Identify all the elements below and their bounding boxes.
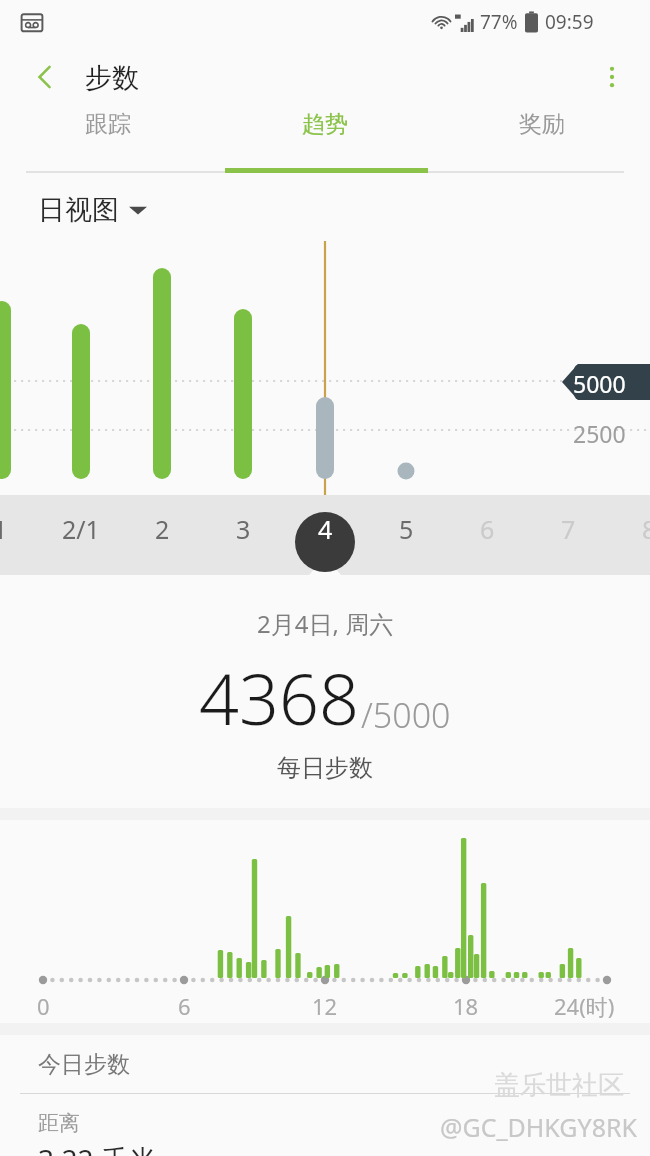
- staticText: @GC_DHKGY8RK: [440, 1110, 638, 1144]
- button[interactable]: 2: [129, 512, 195, 572]
- staticText: 距离: [38, 1110, 80, 1136]
- staticText: 3.22 千米: [38, 1140, 157, 1156]
- staticText: 24(时): [554, 991, 615, 1021]
- staticText: 12: [312, 991, 338, 1021]
- staticText: 奖励: [519, 110, 565, 139]
- button[interactable]: 日视图: [38, 193, 147, 227]
- staticText: 2500: [573, 418, 626, 449]
- staticText: 1: [0, 512, 8, 546]
- staticText: 6: [178, 991, 191, 1021]
- staticText: 6: [480, 512, 495, 546]
- button[interactable]: 4: [292, 512, 358, 572]
- button[interactable]: 距离: [0, 1094, 650, 1156]
- staticText: /5000: [361, 692, 451, 738]
- staticText: 跟踪: [85, 110, 131, 139]
- button[interactable]: More options: [588, 53, 636, 101]
- button[interactable]: 3: [210, 512, 276, 572]
- button[interactable]: 8: [616, 512, 650, 572]
- button[interactable]: 7: [535, 512, 601, 572]
- button[interactable]: 今日步数: [0, 1035, 650, 1093]
- staticText: 3: [236, 512, 251, 546]
- button[interactable]: 1: [0, 512, 33, 572]
- staticText: 今日步数: [38, 1050, 130, 1079]
- button[interactable]: 6: [454, 512, 520, 572]
- staticText: 18: [453, 991, 479, 1021]
- staticText: 每日步数: [277, 753, 373, 783]
- staticText: 盖乐世社区: [494, 1069, 624, 1102]
- staticText: 5000: [573, 368, 626, 399]
- staticText: 8: [642, 512, 650, 546]
- staticText: 2月4日, 周六: [257, 607, 394, 640]
- staticText: 日视图: [38, 193, 119, 227]
- staticText: 2/1: [62, 512, 100, 546]
- staticText: 4368: [199, 650, 359, 745]
- staticText: 0: [37, 991, 50, 1021]
- staticText: 4: [318, 512, 333, 546]
- button[interactable]: 奖励: [433, 110, 650, 139]
- staticText: 7: [561, 512, 576, 546]
- staticText: 5: [399, 512, 414, 546]
- button[interactable]: 2/1: [48, 512, 114, 572]
- button[interactable]: Back: [22, 54, 68, 100]
- staticText: 2: [155, 512, 170, 546]
- button[interactable]: 跟踪: [0, 110, 216, 139]
- button[interactable]: 趋势: [216, 110, 433, 139]
- button[interactable]: 5: [373, 512, 439, 572]
- staticText: 09:59: [545, 9, 594, 35]
- staticText: 趋势: [302, 110, 348, 139]
- staticText: 步数: [85, 61, 139, 95]
- staticText: 77%: [480, 9, 518, 35]
